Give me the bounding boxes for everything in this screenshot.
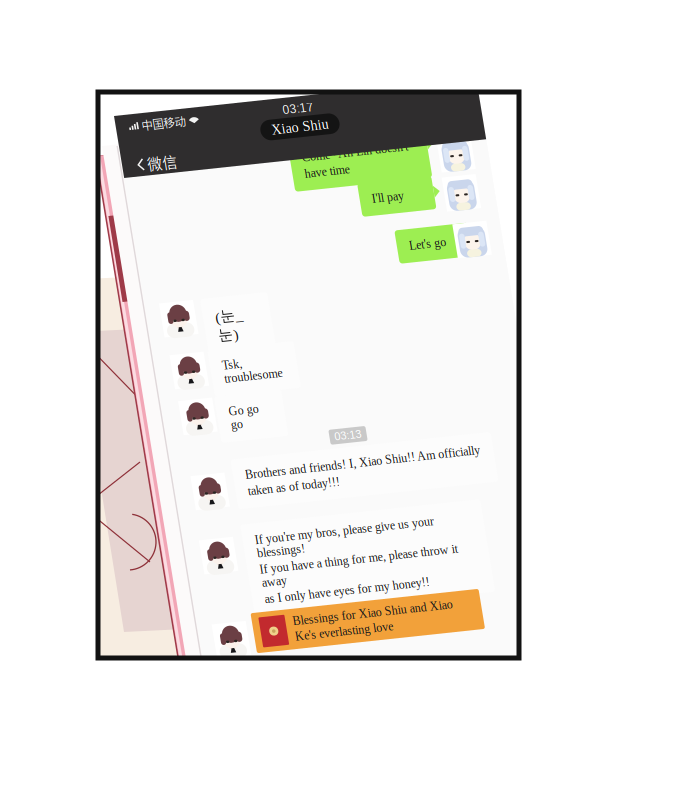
staticText: 中国移动	[123, 96, 167, 112]
staticText: (눈_눈)	[165, 291, 192, 328]
staticText: have time	[276, 162, 321, 176]
staticText: If you have a thing for me, please throw…	[168, 547, 366, 573]
staticText: Brothers and friends! I, Xiao Shiu!! Am …	[169, 452, 404, 465]
staticText: Blessings for Xiao Shiu and Xiao	[192, 601, 352, 614]
staticText: I'll pay	[338, 194, 370, 207]
button[interactable]: 微信	[106, 128, 160, 157]
staticText: Let's go	[367, 244, 404, 257]
staticText: 03:17	[264, 97, 295, 111]
staticText: Tsk, troublesome	[164, 342, 222, 369]
staticText: Go go go	[163, 388, 193, 415]
staticText: Come~ Ah Lin doesn't	[276, 146, 382, 159]
staticText: Xiao Shiu	[250, 114, 307, 130]
staticText: as I only have eyes for my honey!!	[168, 576, 333, 589]
staticText: If you're my bros, please give us your b…	[168, 517, 347, 544]
staticText: taken as of today!!!	[169, 468, 261, 482]
staticText: Ke's everlasting love	[192, 616, 290, 629]
